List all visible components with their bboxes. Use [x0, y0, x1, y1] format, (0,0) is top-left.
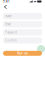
- button[interactable]: Password: [3, 29, 42, 35]
- staticText: Password: [5, 31, 17, 34]
- button[interactable]: Confirm: [3, 37, 42, 44]
- button[interactable]: Back: [3, 4, 8, 9]
- button[interactable]: Sign up: [3, 51, 42, 56]
- staticText: Sign up: [17, 51, 28, 55]
- staticText: Confirm: [5, 39, 16, 42]
- staticText: Name: [5, 14, 12, 18]
- staticText: 9:41: [3, 0, 10, 3]
- button[interactable]: Email: [3, 21, 42, 27]
- button[interactable]: Name: [3, 13, 42, 19]
- staticText: Email: [5, 22, 11, 26]
